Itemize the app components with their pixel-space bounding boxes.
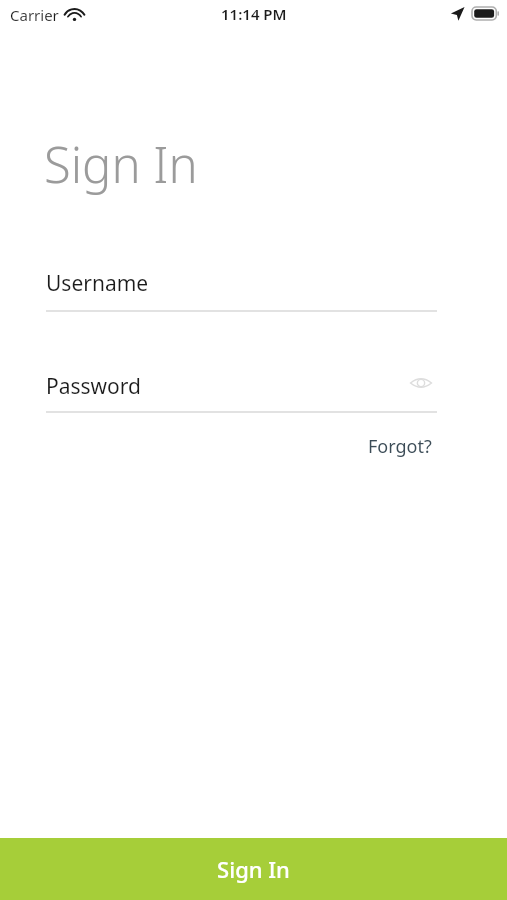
button[interactable]: Sign In: [0, 838, 507, 900]
staticText: Carrier: [10, 5, 59, 25]
staticText: Forgot?: [368, 434, 432, 459]
button[interactable]: Password: [46, 372, 141, 401]
staticText: 11:14 PM: [221, 4, 287, 24]
button[interactable]: Forgot?: [360, 430, 440, 463]
staticText: Sign In: [217, 854, 290, 884]
staticText: Sign In: [44, 131, 198, 198]
button[interactable]: Show password: [404, 369, 437, 397]
button[interactable]: Username: [46, 269, 149, 298]
